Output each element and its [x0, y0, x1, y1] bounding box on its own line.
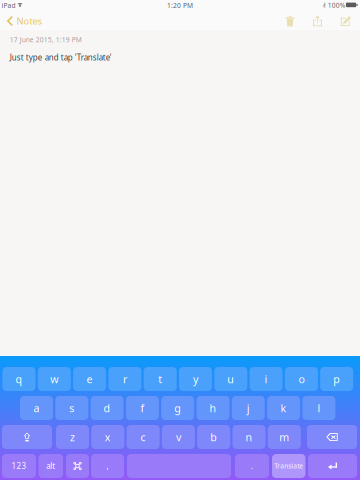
button[interactable]: g — [161, 396, 194, 420]
button[interactable]: x — [91, 425, 124, 449]
button[interactable]: i — [250, 367, 283, 391]
staticText: w — [50, 372, 58, 386]
staticText: u — [227, 372, 234, 386]
staticText: o — [298, 372, 304, 386]
staticText: , — [106, 461, 108, 471]
button[interactable]: l — [302, 396, 335, 420]
staticText: p — [333, 372, 340, 386]
staticText: i — [265, 372, 268, 386]
button[interactable]: r — [108, 367, 141, 391]
staticText: . — [251, 461, 253, 471]
staticText: k — [281, 401, 287, 415]
button[interactable]: a — [20, 396, 53, 420]
staticText: l — [317, 401, 320, 415]
button[interactable]: p — [320, 367, 353, 391]
button[interactable]: Shift — [2, 425, 52, 449]
button[interactable]: Translate — [272, 454, 305, 478]
staticText: x — [105, 430, 111, 444]
staticText: v — [176, 430, 181, 444]
staticText: t — [158, 372, 162, 386]
button[interactable]: e — [73, 367, 106, 391]
button[interactable]: u — [214, 367, 247, 391]
staticText: alt — [46, 461, 55, 471]
staticText: s — [69, 401, 74, 415]
button[interactable]: Return — [308, 454, 357, 478]
staticText: q — [15, 372, 22, 386]
staticText: z — [70, 430, 75, 444]
staticText: b — [210, 430, 217, 444]
staticText: f — [140, 401, 144, 415]
button[interactable]: Delete — [307, 425, 357, 449]
button[interactable]: b — [197, 425, 230, 449]
button[interactable]: h — [196, 396, 229, 420]
button[interactable]: , — [91, 454, 124, 478]
button[interactable]: n — [232, 425, 265, 449]
button[interactable]: j — [232, 396, 265, 420]
staticText: 100% — [328, 1, 346, 10]
button[interactable]: y — [179, 367, 212, 391]
button[interactable]: c — [127, 425, 160, 449]
staticText: h — [209, 401, 216, 415]
staticText: m — [279, 430, 289, 444]
button[interactable]: m — [268, 425, 301, 449]
staticText: Translate — [274, 462, 303, 470]
staticText: Notes — [16, 15, 41, 27]
button[interactable]: alt — [38, 454, 63, 478]
button[interactable]: Notes — [1, 12, 46, 30]
staticText: g — [174, 401, 181, 415]
button[interactable]: o — [285, 367, 318, 391]
button[interactable]: k — [267, 396, 300, 420]
button[interactable]: z — [56, 425, 89, 449]
button[interactable]: v — [162, 425, 195, 449]
staticText: Just type and tap 'Translate' — [10, 52, 112, 63]
staticText: r — [123, 372, 127, 386]
staticText: y — [193, 372, 198, 386]
button[interactable]: Share — [306, 12, 328, 30]
button[interactable]: s — [55, 396, 88, 420]
button[interactable]: Compose — [335, 12, 357, 30]
button[interactable]: w — [38, 367, 71, 391]
button[interactable]: q — [2, 367, 35, 391]
staticText: n — [245, 430, 252, 444]
staticText: d — [104, 401, 111, 415]
button[interactable]: Command — [66, 454, 89, 478]
staticText: iPad — [1, 1, 15, 10]
staticText: c — [141, 430, 146, 444]
staticText: 123 — [11, 461, 26, 471]
staticText: a — [33, 401, 39, 415]
staticText: 1:20 PM — [167, 1, 193, 10]
button[interactable]: Delete — [279, 12, 301, 30]
button[interactable]: 123 — [2, 454, 36, 478]
button[interactable]: . — [235, 454, 269, 478]
button[interactable]: f — [126, 396, 159, 420]
staticText: 17 June 2015, 1:19 PM — [10, 35, 82, 44]
staticText: e — [87, 372, 93, 386]
button[interactable]: d — [91, 396, 124, 420]
button[interactable]: t — [144, 367, 177, 391]
staticText: j — [247, 401, 250, 415]
